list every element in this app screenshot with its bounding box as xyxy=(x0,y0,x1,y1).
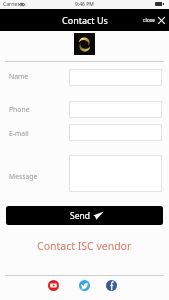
button[interactable]: Contact ISC vendor xyxy=(0,238,169,253)
staticText: Contact ISC vendor xyxy=(37,239,132,253)
button[interactable] xyxy=(69,124,162,141)
button[interactable] xyxy=(69,69,162,86)
button[interactable] xyxy=(69,155,162,192)
button[interactable]: Facebook xyxy=(106,280,117,291)
staticText: Phone xyxy=(9,105,30,114)
staticText: Message xyxy=(9,172,38,181)
button[interactable]: Twitter xyxy=(79,280,90,291)
button[interactable] xyxy=(69,101,162,118)
staticText: Name xyxy=(9,72,29,81)
button[interactable]: YouTube xyxy=(48,280,59,291)
staticText: Carrier xyxy=(3,1,20,8)
staticText: 9:46 PM xyxy=(75,1,94,8)
button[interactable]: Close xyxy=(143,9,166,31)
staticText: E-mail xyxy=(9,129,29,138)
staticText: close xyxy=(143,17,155,24)
staticText: Contact Us xyxy=(62,14,108,26)
staticText: Send xyxy=(70,210,90,222)
button[interactable]: Send xyxy=(6,206,163,225)
